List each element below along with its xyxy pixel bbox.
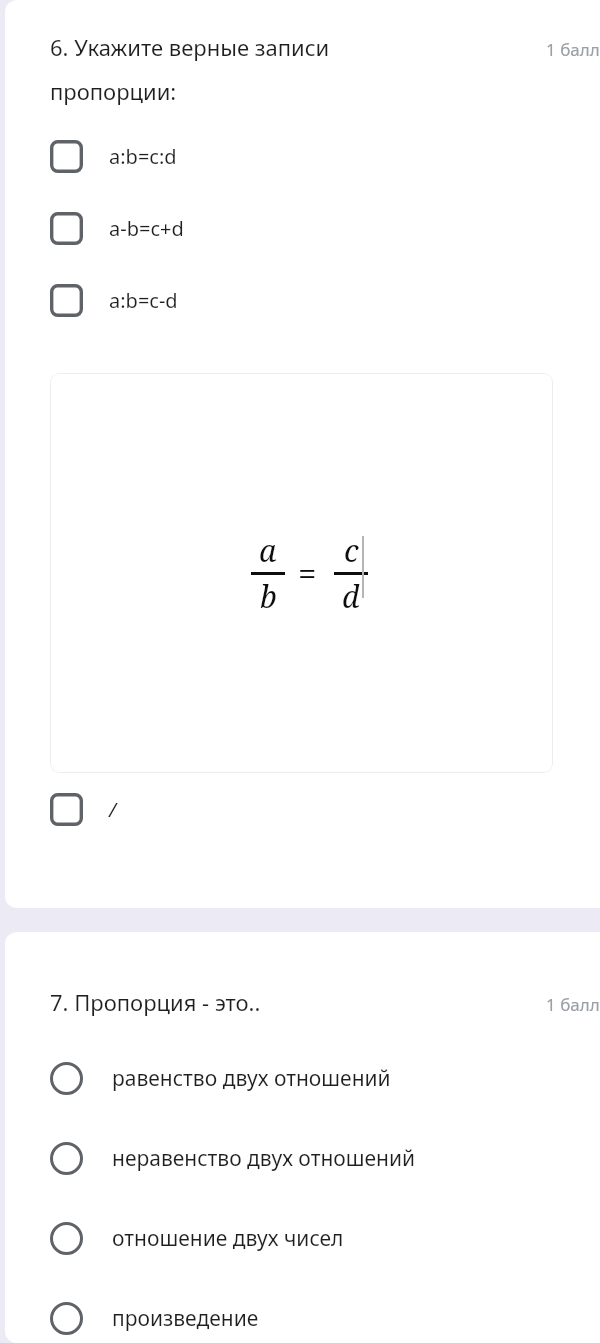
staticText: d bbox=[342, 576, 360, 617]
button[interactable]: Check a:b=c:d bbox=[5, 137, 600, 176]
other: Select отношение двух чисел bbox=[50, 1222, 83, 1255]
staticText: a bbox=[259, 530, 277, 571]
button[interactable]: Select равенство двух отношений bbox=[5, 1059, 600, 1098]
staticText: 1 балл bbox=[546, 993, 600, 1016]
other: Select произведение bbox=[50, 1302, 83, 1335]
button[interactable]: Select неравенство двух отношений bbox=[5, 1139, 600, 1178]
staticText: c bbox=[344, 530, 359, 571]
staticText: a-b=c+d bbox=[109, 215, 184, 242]
staticText: неравенство двух отношений bbox=[112, 1144, 416, 1173]
other: Check / bbox=[50, 793, 83, 826]
other: Select равенство двух отношений bbox=[50, 1062, 83, 1095]
staticText: = bbox=[298, 551, 317, 596]
button[interactable]: Select произведение bbox=[5, 1299, 600, 1338]
staticText: a:b=c-d bbox=[109, 287, 178, 314]
staticText: равенство двух отношений bbox=[112, 1064, 391, 1093]
other: Check a:b=c:d bbox=[50, 140, 83, 173]
staticText: произведение bbox=[112, 1304, 264, 1333]
staticText: b bbox=[260, 576, 277, 617]
button[interactable]: Check a-b=c+d bbox=[5, 209, 600, 248]
staticText: 6. Укажите верные записи пропорции: bbox=[50, 32, 435, 107]
staticText: отношение двух чисел bbox=[112, 1224, 344, 1253]
other: Select неравенство двух отношений bbox=[50, 1142, 83, 1175]
staticText: 7. Пропорция - это.. bbox=[50, 987, 261, 1017]
staticText: / bbox=[109, 796, 117, 823]
other: Check a:b=c-d bbox=[50, 284, 83, 317]
button[interactable]: Check / bbox=[5, 790, 600, 829]
staticText: a:b=c:d bbox=[109, 143, 177, 170]
staticText: 1 балл bbox=[546, 38, 600, 61]
button[interactable]: Check a:b=c-d bbox=[5, 281, 600, 320]
other: Check a-b=c+d bbox=[50, 212, 83, 245]
button[interactable]: Select отношение двух чисел bbox=[5, 1219, 600, 1258]
